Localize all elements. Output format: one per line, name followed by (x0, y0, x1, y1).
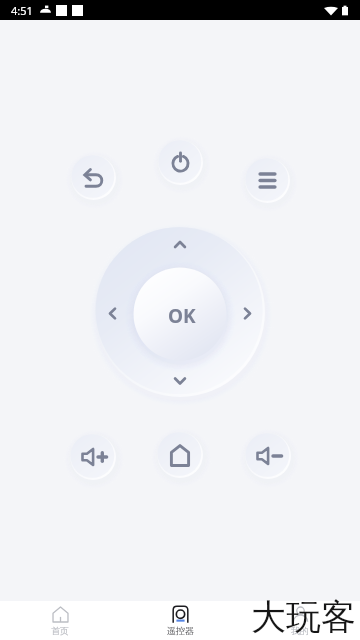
staticText: 首页 (51, 625, 69, 636)
button[interactable]: 我的 (240, 601, 360, 640)
staticText: 大玩客 (251, 595, 356, 639)
button[interactable]: Volume up (62, 426, 124, 488)
button[interactable]: Power (150, 132, 211, 193)
button[interactable]: Back (63, 147, 124, 208)
button[interactable]: Menu (237, 150, 298, 211)
button[interactable]: 首页 (0, 601, 120, 640)
button[interactable]: OK (134, 268, 227, 361)
button[interactable]: 遥控器 (120, 601, 240, 640)
staticText: 我的 (291, 625, 309, 636)
button[interactable]: Home (149, 424, 211, 486)
staticText: OK (168, 303, 196, 329)
staticText: 4:51 (11, 3, 33, 18)
staticText: 遥控器 (167, 625, 194, 636)
button[interactable]: Volume down (237, 425, 299, 487)
